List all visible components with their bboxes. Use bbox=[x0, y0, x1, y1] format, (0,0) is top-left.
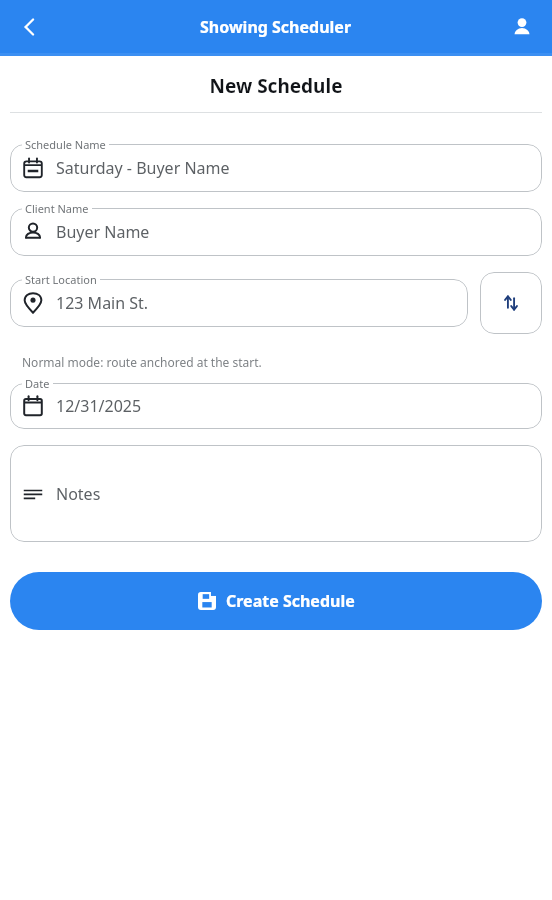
staticText: Notes bbox=[56, 483, 101, 505]
button[interactable]: Swap start and end bbox=[480, 272, 542, 334]
button[interactable]: Account bbox=[500, 5, 544, 49]
staticText: Normal mode: route anchored at the start… bbox=[22, 354, 262, 370]
staticText: Saturday - Buyer Name bbox=[56, 157, 230, 179]
staticText: 123 Main St. bbox=[56, 292, 149, 314]
button[interactable]: Create Schedule bbox=[10, 572, 542, 630]
staticText: Start Location bbox=[25, 272, 97, 287]
button[interactable]: 123 Main St. bbox=[10, 279, 468, 327]
staticText: 12/31/2025 bbox=[56, 395, 142, 417]
staticText: Client Name bbox=[25, 201, 89, 216]
staticText: Date bbox=[25, 376, 50, 391]
button[interactable]: Buyer Name bbox=[10, 208, 542, 256]
staticText: Create Schedule bbox=[226, 590, 355, 612]
staticText: Buyer Name bbox=[56, 221, 150, 243]
staticText: Schedule Name bbox=[25, 137, 106, 152]
staticText: New Schedule bbox=[0, 73, 552, 99]
button[interactable]: Notes bbox=[10, 445, 542, 542]
button[interactable]: Back bbox=[8, 5, 52, 49]
button[interactable]: 12/31/2025 bbox=[10, 383, 542, 429]
button[interactable]: Saturday - Buyer Name bbox=[10, 144, 542, 192]
staticText: Showing Scheduler bbox=[200, 16, 352, 38]
